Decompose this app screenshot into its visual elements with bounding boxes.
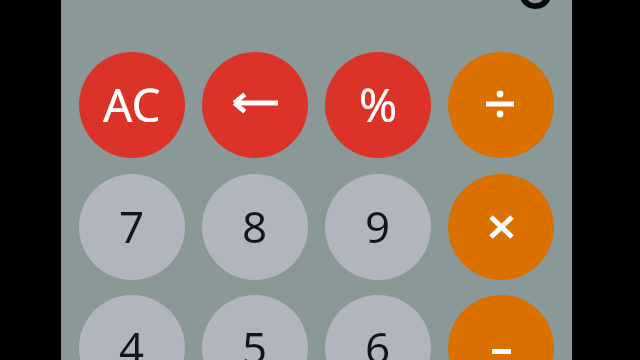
staticText: % [359,73,398,136]
staticText: AC [103,73,161,136]
staticText: 6 [365,317,391,360]
button[interactable]: Subtract [448,295,554,360]
button[interactable]: Multiply [448,174,554,280]
button[interactable]: 9 [325,174,431,280]
button[interactable]: 5 [202,295,308,360]
staticText: 8 [242,196,268,256]
button[interactable]: 7 [79,174,185,280]
staticText: 5 [242,317,268,360]
button[interactable]: Result 0 [481,0,621,20]
button[interactable]: 6 [325,295,431,360]
staticText: 0 [513,0,558,20]
button[interactable]: Divide [448,52,554,158]
button[interactable]: AC [79,52,185,158]
button[interactable]: % [325,52,431,158]
staticText: 7 [119,196,145,256]
button[interactable]: Backspace [202,52,308,158]
button[interactable]: 8 [202,174,308,280]
staticText: 9 [365,196,391,256]
button[interactable]: 4 [79,295,185,360]
staticText: 4 [119,317,145,360]
